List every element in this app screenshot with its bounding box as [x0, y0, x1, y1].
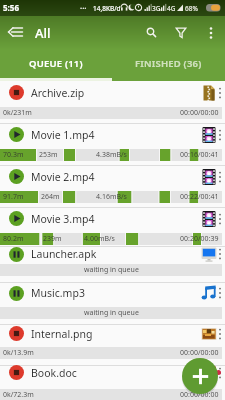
staticText: Movie 1.mp4	[31, 128, 95, 142]
staticText: All	[35, 24, 51, 42]
staticText: 0k/231m	[3, 108, 32, 118]
staticText: 00:00/00:00	[180, 390, 219, 400]
staticText: waiting in queue	[84, 308, 139, 318]
staticText: 00:20/00:39	[180, 234, 219, 244]
staticText: waiting in queue	[84, 265, 139, 275]
button[interactable]	[171, 23, 191, 43]
button[interactable]	[0, 167, 225, 187]
staticText: 14,8KB/d	[93, 4, 121, 13]
button[interactable]: QUEUE (11)	[0, 48, 112, 79]
button[interactable]	[0, 83, 225, 103]
button[interactable]	[4, 22, 30, 43]
button[interactable]	[182, 358, 218, 394]
staticText: Launcher.apk	[31, 247, 97, 261]
button[interactable]	[202, 23, 220, 43]
staticText: 5:56	[3, 2, 19, 13]
button[interactable]	[0, 363, 225, 383]
staticText: 91.7m	[3, 192, 24, 202]
staticText: ...	[80, 0, 87, 11]
button[interactable]: FINISHED (36)	[112, 48, 225, 79]
staticText: 239m	[43, 234, 62, 244]
button[interactable]	[142, 23, 162, 43]
button[interactable]	[0, 324, 225, 344]
staticText: 68%	[185, 4, 198, 13]
staticText: Archive.zip	[31, 86, 85, 100]
staticText: 80.2m	[3, 234, 24, 244]
button[interactable]	[0, 209, 225, 229]
button[interactable]	[0, 283, 225, 303]
staticText: 00:00/00:00	[180, 108, 219, 118]
staticText: 0k/72.3m	[3, 390, 34, 400]
staticText: 264m	[41, 192, 60, 202]
staticText: 00:22/00:41	[180, 192, 219, 202]
staticText: Music.mp3	[31, 286, 85, 300]
staticText: 4.16mB/s	[96, 192, 127, 202]
staticText: Internal.png	[31, 327, 93, 341]
staticText: Movie 2.mp4	[31, 170, 95, 184]
staticText: 70.3m	[3, 150, 24, 160]
staticText: 3G	[152, 4, 161, 13]
staticText: 0k/13.9m	[3, 348, 34, 358]
staticText: 00:16/00:41	[180, 150, 219, 160]
button[interactable]	[0, 125, 225, 145]
staticText: 4.00mB/s	[84, 234, 115, 244]
staticText: 00:00/00:00	[180, 348, 219, 358]
staticText: Movie 3.mp4	[31, 212, 95, 226]
button[interactable]	[0, 244, 225, 264]
staticText: 4.38mB/s	[96, 150, 127, 160]
staticText: 4G	[167, 4, 176, 13]
staticText: FINISHED (36)	[135, 57, 202, 70]
staticText: 253m	[39, 150, 58, 160]
staticText: QUEUE (11)	[29, 57, 83, 70]
staticText: Book.doc	[31, 366, 77, 380]
